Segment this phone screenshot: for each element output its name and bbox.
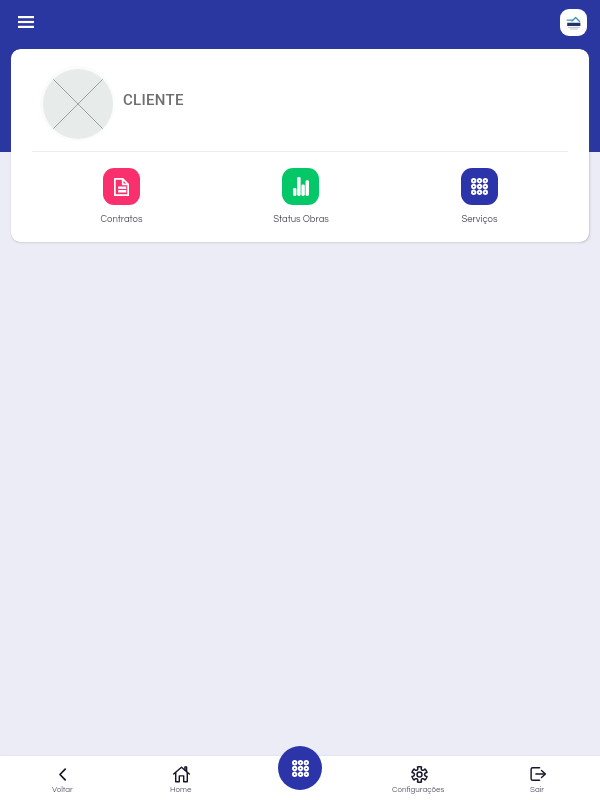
button[interactable]: Home <box>121 756 240 800</box>
staticText: Contratos <box>100 214 143 224</box>
staticText: Voltar <box>52 785 73 793</box>
button[interactable]: Apps menu <box>278 746 322 790</box>
staticText: Serviços <box>461 214 498 224</box>
button[interactable]: Menu <box>10 6 42 38</box>
button[interactable]: Settings <box>359 756 478 800</box>
button[interactable]: Serviços <box>390 168 569 224</box>
button[interactable]: App logo <box>560 9 587 36</box>
button[interactable]: Status Obras <box>211 168 390 224</box>
staticText: Home <box>170 785 192 793</box>
staticText: CLIENTE <box>123 91 184 109</box>
staticText: Status Obras <box>273 214 329 224</box>
staticText: Configurações <box>392 785 445 793</box>
button[interactable]: Contratos <box>31 168 211 224</box>
button[interactable]: Logout <box>478 756 597 800</box>
staticText: Sair <box>530 785 545 793</box>
button[interactable]: Back <box>3 756 121 800</box>
